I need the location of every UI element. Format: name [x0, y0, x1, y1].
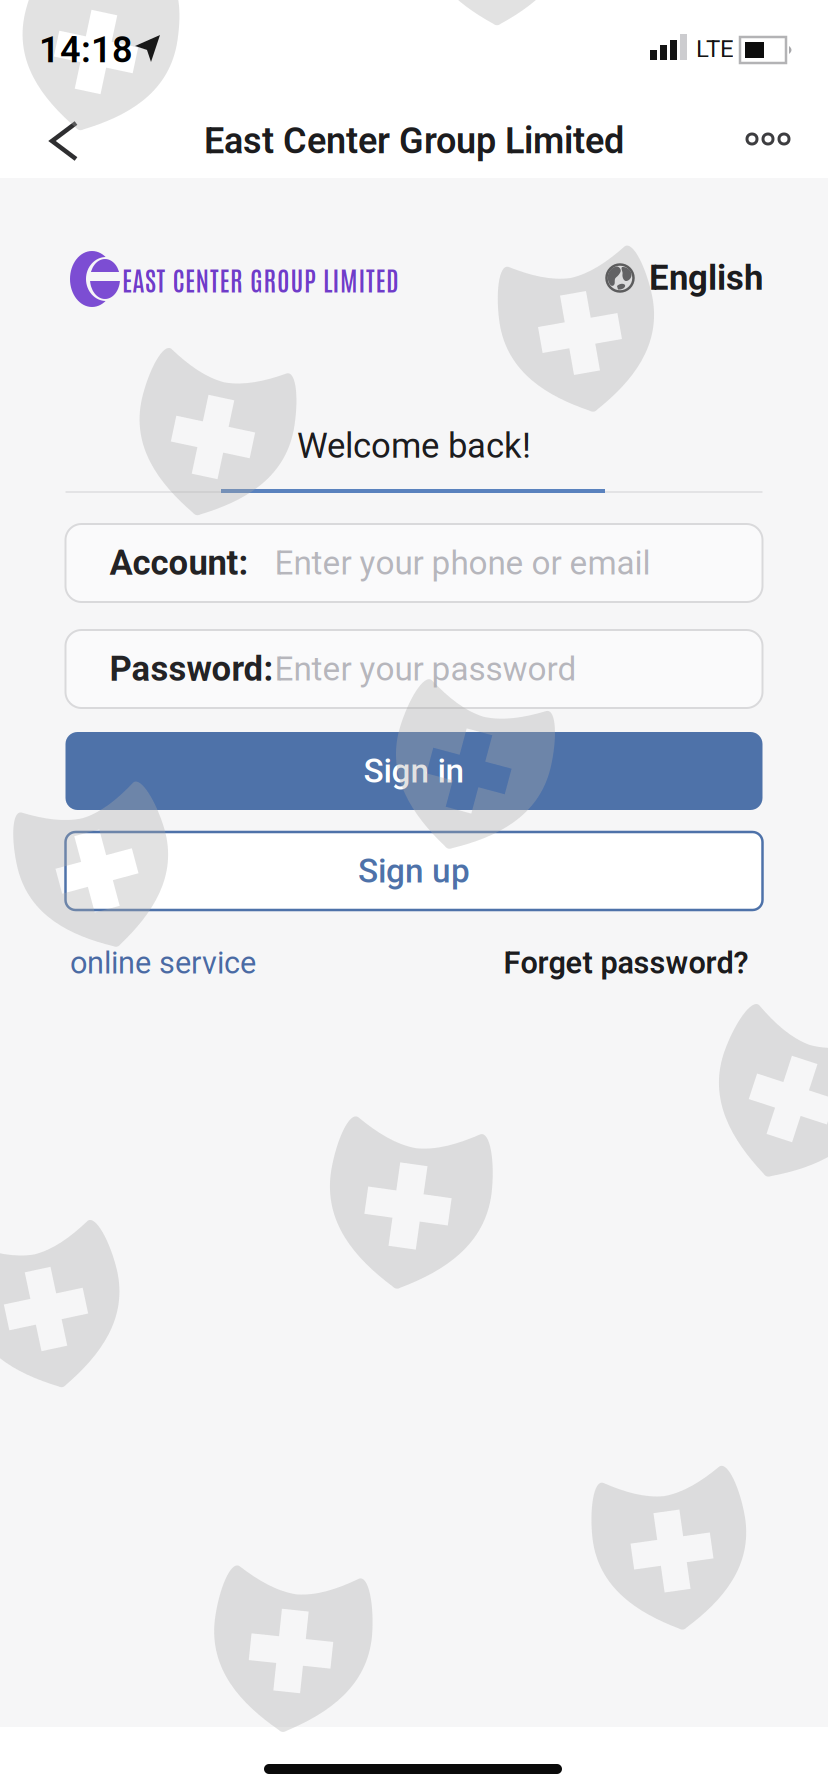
- staticText: LTE: [696, 35, 734, 63]
- button[interactable]: More: [747, 124, 789, 154]
- staticText: 14:18: [39, 29, 133, 71]
- button[interactable]: Sign up: [65, 832, 762, 910]
- button[interactable]: Account:: [65, 524, 762, 602]
- button[interactable]: Language: English: [605, 255, 763, 301]
- button[interactable]: Back: [44, 113, 88, 169]
- staticText: Enter your phone or email: [274, 543, 650, 583]
- staticText: EAST CENTER GROUP LIMITED: [122, 262, 399, 296]
- staticText: Enter your password: [274, 649, 576, 689]
- staticText: Sign in: [363, 751, 464, 791]
- staticText: online service: [70, 945, 256, 981]
- button[interactable]: online service: [70, 945, 256, 981]
- staticText: Forget password?: [503, 945, 748, 981]
- staticText: English: [649, 258, 763, 298]
- staticText: Sign up: [358, 851, 470, 891]
- staticText: Welcome back!: [297, 426, 531, 466]
- button[interactable]: Password:: [65, 630, 762, 708]
- button[interactable]: Sign in: [65, 732, 762, 810]
- button[interactable]: Forget password?: [503, 945, 748, 981]
- staticText: East Center Group Limited: [204, 120, 624, 162]
- staticText: Password:: [109, 649, 273, 689]
- staticText: Account:: [109, 543, 248, 583]
